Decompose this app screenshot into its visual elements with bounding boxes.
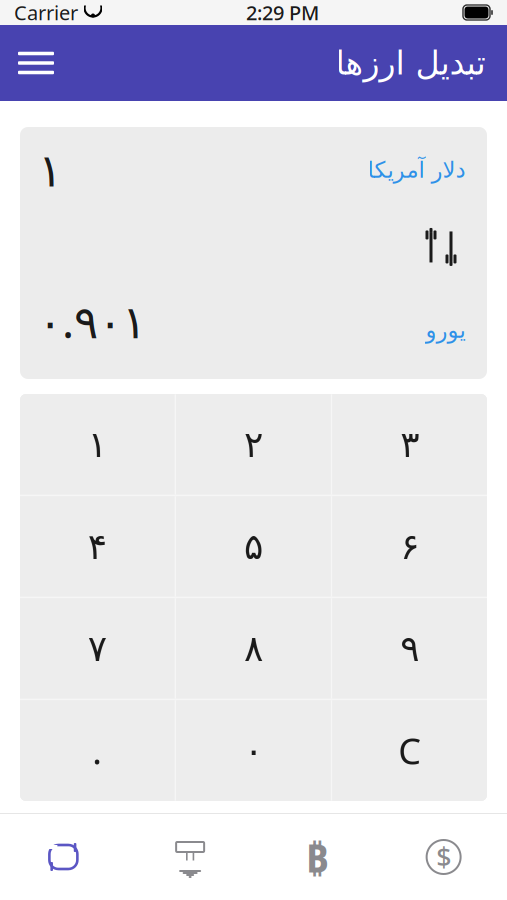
staticText: ۹ xyxy=(400,628,419,669)
staticText: ۴ xyxy=(88,526,107,567)
staticText: ۸ xyxy=(244,628,263,669)
button[interactable]: . xyxy=(20,700,175,801)
button[interactable]: ۹ xyxy=(332,598,487,699)
button[interactable]: ۰ xyxy=(176,700,331,801)
staticText: ۵ xyxy=(244,526,263,567)
staticText: تبدیل ارزها xyxy=(335,44,485,82)
button[interactable]: ۶ xyxy=(332,496,487,597)
staticText: ۶ xyxy=(400,526,419,567)
button[interactable]: دلار آمریکا xyxy=(363,155,469,185)
button[interactable]: ۷ xyxy=(20,598,175,699)
button[interactable]: ۴ xyxy=(20,496,175,597)
button[interactable]: Convert xyxy=(0,814,127,900)
staticText: ۱ xyxy=(38,145,62,196)
button[interactable]: ۲ xyxy=(176,394,331,495)
staticText: Carrier xyxy=(14,0,78,26)
button[interactable]: یورو xyxy=(421,315,469,345)
button[interactable]: Crypto xyxy=(253,814,380,900)
staticText: یورو xyxy=(425,317,465,343)
staticText: ۳ xyxy=(400,424,419,465)
button[interactable]: Menu xyxy=(0,38,72,88)
button[interactable]: ۸ xyxy=(176,598,331,699)
button[interactable]: ۱ xyxy=(20,394,175,495)
button[interactable]: C xyxy=(332,700,487,801)
button[interactable]: ۵ xyxy=(176,496,331,597)
staticText: ۲ xyxy=(244,424,263,465)
staticText: ۱ xyxy=(88,424,107,465)
button[interactable]: ۳ xyxy=(332,394,487,495)
staticText: ۷ xyxy=(88,628,107,669)
staticText: 2:29 PM xyxy=(246,0,319,26)
button[interactable]: Currency xyxy=(380,814,507,900)
staticText: ۰.۹۰۱ xyxy=(38,290,146,351)
staticText: C xyxy=(398,727,421,774)
button[interactable]: Gold xyxy=(127,814,254,900)
button[interactable]: Swap currencies xyxy=(413,218,469,270)
staticText: . xyxy=(92,727,102,774)
staticText: $ xyxy=(436,839,451,875)
staticText: دلار آمریکا xyxy=(367,157,465,183)
staticText: ₿ xyxy=(305,830,328,883)
staticText: ۰ xyxy=(244,730,263,771)
